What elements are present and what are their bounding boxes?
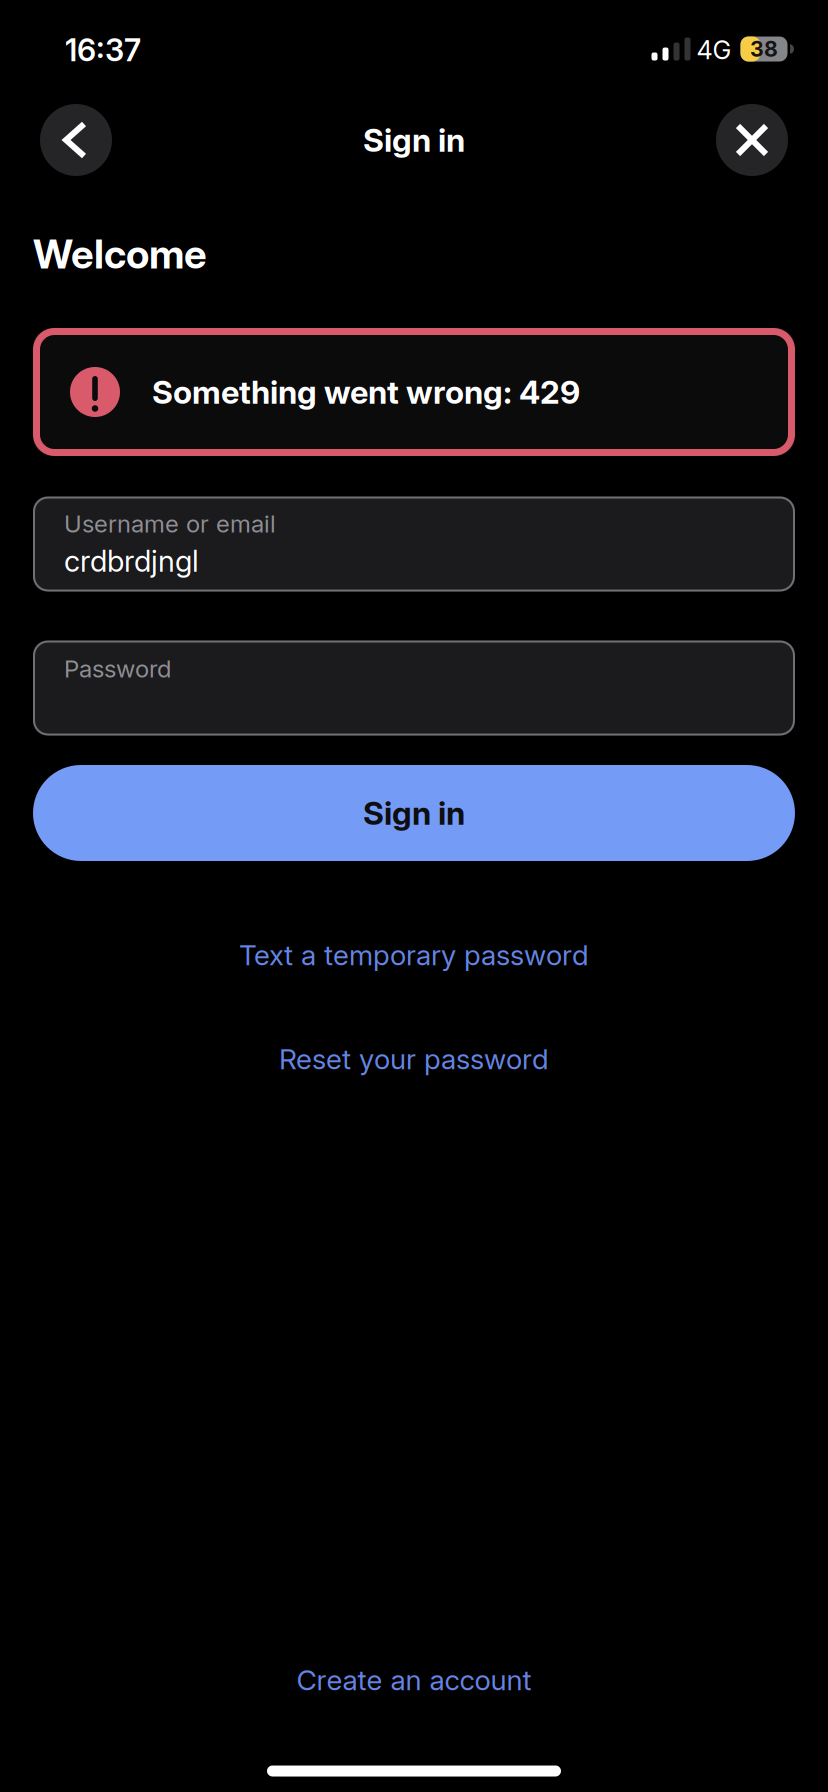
staticText: Text a temporary password [239, 938, 589, 971]
staticText: Reset your password [279, 1042, 549, 1075]
staticText: Create an account [296, 1663, 531, 1696]
button[interactable]: Reset your password [279, 1042, 549, 1075]
staticText: 38 [750, 36, 778, 62]
staticText: Sign in [363, 794, 465, 832]
staticText: crdbrdjngl [64, 544, 199, 578]
staticText: Username or email [64, 509, 276, 538]
staticText: Sign in [363, 121, 465, 159]
staticText: Something went wrong: 429 [152, 373, 580, 411]
button[interactable]: Text a temporary password [239, 938, 589, 971]
button[interactable]: Create an account [296, 1663, 531, 1696]
staticText: 4G [696, 35, 731, 65]
button[interactable] [40, 104, 112, 176]
button[interactable] [716, 104, 788, 176]
staticText: Password [64, 654, 171, 683]
staticText: Welcome [33, 230, 207, 278]
button[interactable]: Password [33, 640, 795, 735]
button[interactable]: Username or email [33, 496, 795, 591]
button[interactable]: Sign in [33, 765, 795, 861]
staticText: 16:37 [65, 32, 141, 68]
